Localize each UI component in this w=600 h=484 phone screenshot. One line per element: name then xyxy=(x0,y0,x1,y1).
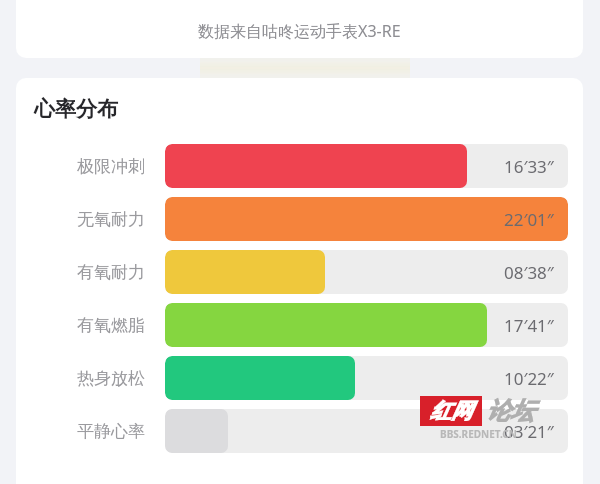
button[interactable]: 平静心率 xyxy=(16,409,583,453)
staticText: 心率分布 xyxy=(34,96,118,122)
button[interactable]: 无氧耐力 xyxy=(16,197,583,241)
staticText: 有氧燃脂 xyxy=(77,315,145,336)
staticText: 有氧耐力 xyxy=(77,262,145,283)
button[interactable]: 热身放松 xyxy=(16,356,583,400)
button[interactable]: 数据来自咕咚运动手表X3-RE xyxy=(16,0,583,58)
button[interactable]: 有氧燃脂 xyxy=(16,303,583,347)
staticText: BBS.REDNET.CN xyxy=(440,427,517,441)
staticText: 热身放松 xyxy=(77,368,145,389)
staticText: 无氧耐力 xyxy=(77,209,145,230)
staticText: 22′01″ xyxy=(504,208,554,231)
staticText: 16′33″ xyxy=(504,155,554,178)
staticText: 10′22″ xyxy=(504,367,554,390)
staticText: 极限冲刺 xyxy=(77,156,145,177)
staticText: 17′41″ xyxy=(504,314,554,337)
button[interactable]: 红网论坛 watermark xyxy=(420,396,580,454)
staticText: 数据来自咕咚运动手表X3-RE xyxy=(198,20,401,42)
staticText: 08′38″ xyxy=(504,261,554,284)
button[interactable]: 有氧耐力 xyxy=(16,250,583,294)
staticText: 红网 xyxy=(430,398,472,424)
staticText: 03′21″ xyxy=(504,420,554,443)
staticText: 论坛 xyxy=(486,396,534,426)
staticText: 平静心率 xyxy=(77,421,145,442)
button[interactable]: 极限冲刺 xyxy=(16,144,583,188)
